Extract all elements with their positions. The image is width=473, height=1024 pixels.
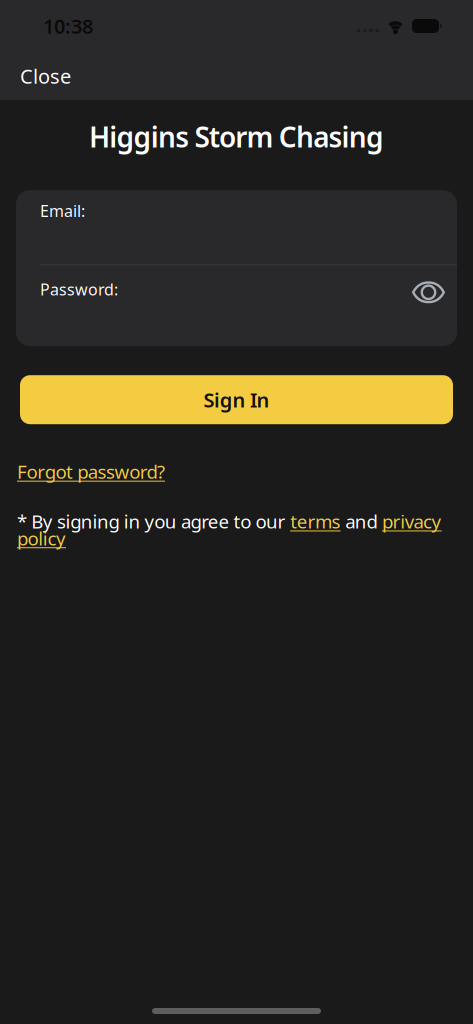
button[interactable]: privacy — [382, 509, 442, 534]
button[interactable]: policy — [17, 526, 66, 551]
staticText: Higgins Storm Chasing — [89, 118, 384, 155]
staticText: Close — [20, 63, 71, 89]
staticText: * By signing in you agree to our — [17, 509, 290, 534]
staticText: terms — [290, 509, 341, 534]
button[interactable]: Sign In — [20, 375, 453, 424]
button[interactable]: terms — [290, 509, 341, 534]
staticText: Email: — [40, 200, 85, 221]
staticText: 10:38 — [43, 13, 93, 39]
button[interactable]: Close — [20, 63, 71, 89]
staticText: policy — [17, 526, 66, 551]
staticText: and — [341, 509, 382, 534]
staticText: Password: — [40, 279, 118, 300]
button[interactable]: Forgot password? — [17, 459, 165, 484]
button[interactable]: Show password — [412, 275, 445, 303]
staticText: privacy — [382, 509, 442, 534]
staticText: Sign In — [203, 386, 270, 413]
staticText: Forgot password? — [17, 459, 165, 484]
